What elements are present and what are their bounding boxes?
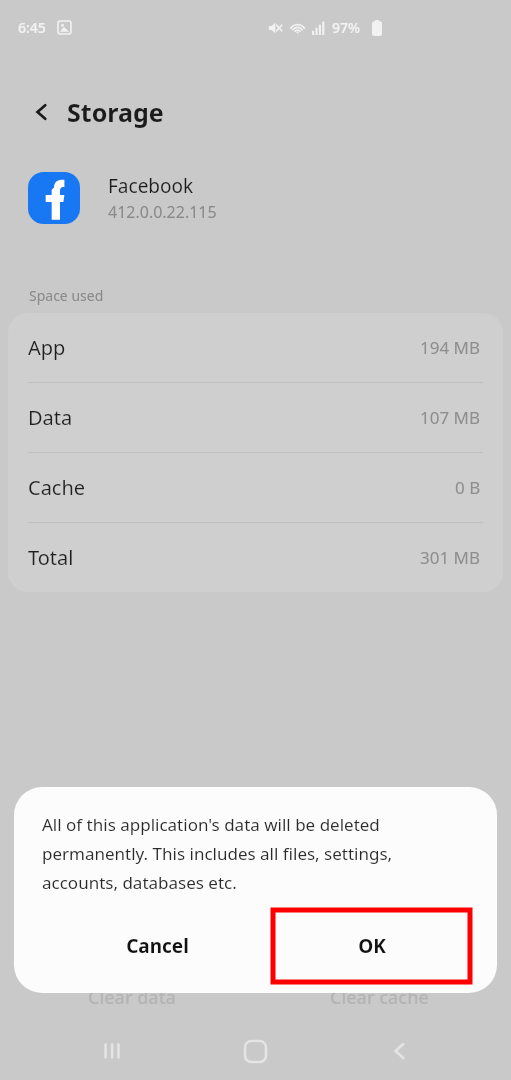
staticText: Cancel — [126, 933, 189, 959]
button[interactable]: OK — [274, 911, 469, 981]
button[interactable]: Cancel — [60, 911, 255, 981]
button[interactable]: Back — [20, 90, 64, 134]
button[interactable]: Home — [223, 1029, 287, 1073]
button[interactable]: Data — [8, 383, 503, 452]
staticText: 412.0.0.22.115 — [108, 201, 217, 223]
button[interactable]: App — [8, 313, 503, 382]
staticText: Clear cache — [330, 985, 429, 1010]
button[interactable]: Back — [368, 1029, 432, 1073]
staticText: 194 MB — [420, 336, 481, 359]
staticText: Total — [28, 544, 74, 571]
staticText: Cache — [28, 474, 86, 501]
staticText: All of this application's data will be d… — [42, 813, 472, 894]
staticText: 6:45 — [18, 18, 46, 37]
staticText: App — [28, 334, 66, 361]
staticText: 301 MB — [420, 546, 481, 569]
staticText: 97% — [332, 18, 360, 37]
staticText: Facebook — [108, 173, 194, 199]
staticText: 0 B — [455, 476, 481, 499]
staticText: Clear data — [88, 985, 176, 1010]
button[interactable]: Cache — [8, 453, 503, 522]
button[interactable]: Recent apps — [80, 1029, 144, 1073]
staticText: OK — [358, 933, 386, 959]
button[interactable]: Total — [8, 523, 503, 592]
staticText: Data — [28, 404, 73, 431]
staticText: Space used — [29, 286, 104, 305]
staticText: 107 MB — [420, 406, 481, 429]
staticText: Storage — [67, 95, 164, 129]
